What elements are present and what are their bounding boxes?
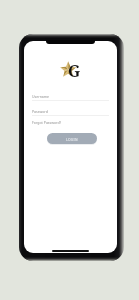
button[interactable]: Forgot Password? (32, 120, 62, 125)
staticText: Username (32, 94, 50, 99)
staticText: Password (32, 109, 48, 114)
staticText: G (68, 60, 81, 82)
staticText: LOGIN (66, 137, 78, 141)
button[interactable]: LOGIN (47, 133, 97, 144)
button[interactable]: Username (32, 94, 109, 101)
button[interactable]: Password (32, 109, 109, 116)
